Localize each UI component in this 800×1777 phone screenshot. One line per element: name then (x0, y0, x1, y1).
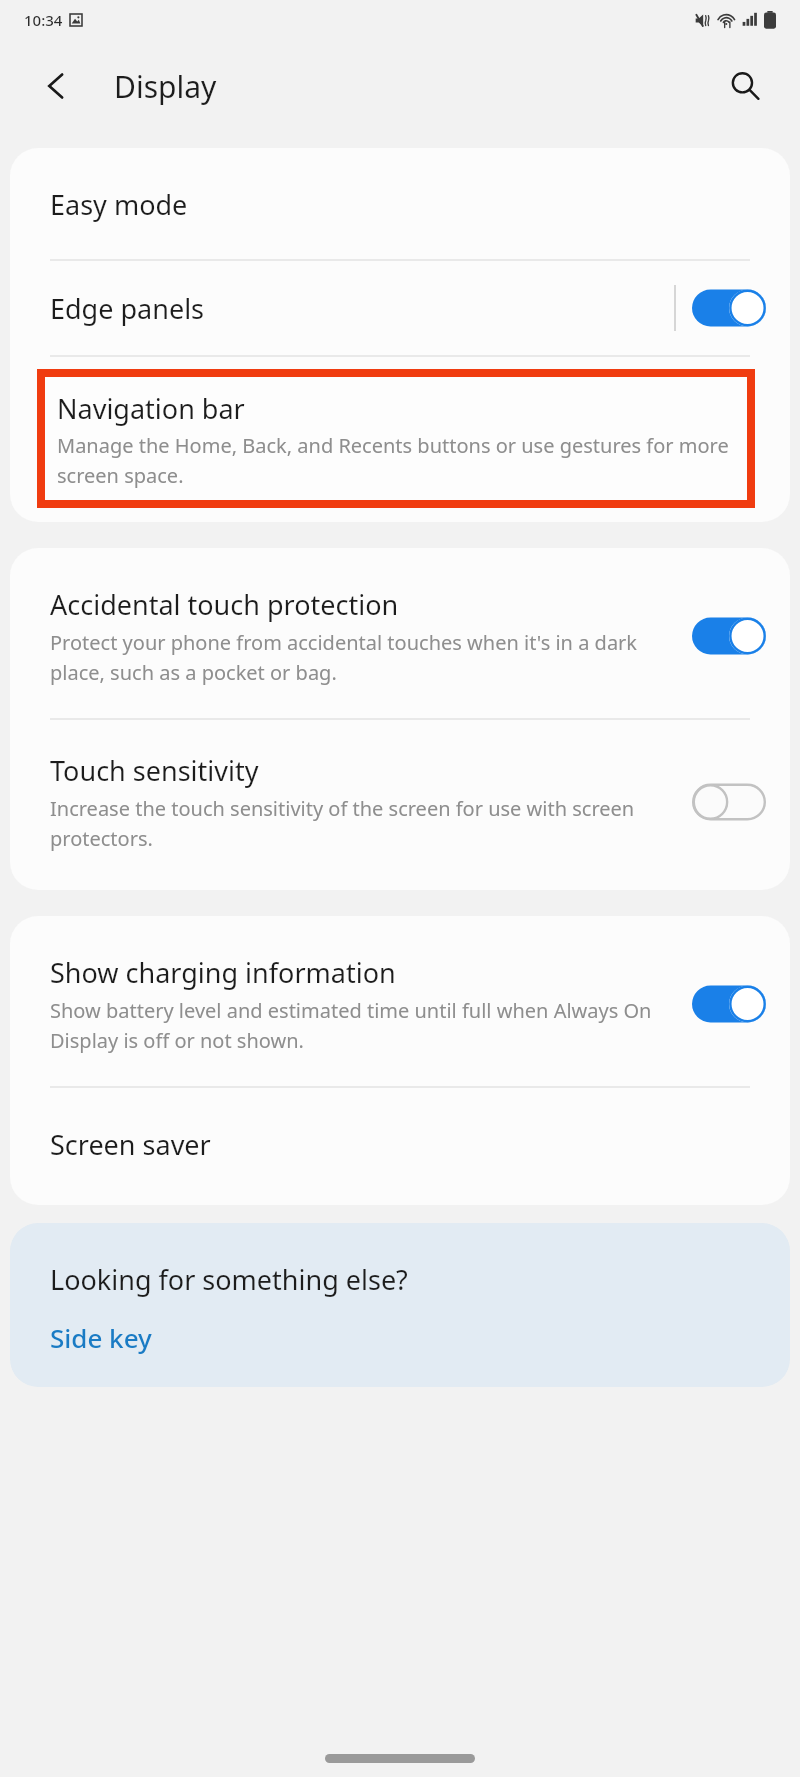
staticText: Increase the touch sensitivity of the sc… (50, 795, 680, 852)
button[interactable]: Easy mode (10, 148, 790, 259)
button[interactable]: Accidental touch protection (10, 548, 790, 718)
staticText: Screen saver (50, 1126, 211, 1163)
staticText: Easy mode (50, 186, 188, 223)
staticText: Show battery level and estimated time un… (50, 997, 680, 1054)
staticText: 10:34 (24, 10, 63, 30)
button[interactable] (692, 286, 766, 330)
staticText: Manage the Home, Back, and Recents butto… (57, 432, 741, 489)
button[interactable]: Screen saver (10, 1088, 790, 1205)
staticText: Protect your phone from accidental touch… (50, 629, 680, 686)
button[interactable] (692, 614, 766, 658)
button[interactable]: Show charging information (10, 916, 790, 1086)
button[interactable] (692, 982, 766, 1026)
staticText: Edge panels (50, 290, 674, 327)
button[interactable]: Side key (50, 1320, 152, 1355)
staticText: Navigation bar (57, 390, 245, 427)
button[interactable]: Navigation bar (45, 377, 747, 500)
button[interactable] (692, 780, 766, 824)
button[interactable]: Touch sensitivity (10, 720, 790, 890)
staticText: Accidental touch protection (50, 586, 399, 623)
staticText: Touch sensitivity (50, 752, 259, 789)
staticText: Show charging information (50, 954, 396, 991)
button[interactable]: Search (716, 57, 774, 115)
button[interactable]: Back (28, 58, 84, 114)
staticText: Display (114, 66, 217, 107)
button[interactable]: Edge panels (10, 261, 790, 355)
button[interactable]: Looking for something else? (10, 1223, 790, 1387)
staticText: Looking for something else? (50, 1261, 408, 1298)
